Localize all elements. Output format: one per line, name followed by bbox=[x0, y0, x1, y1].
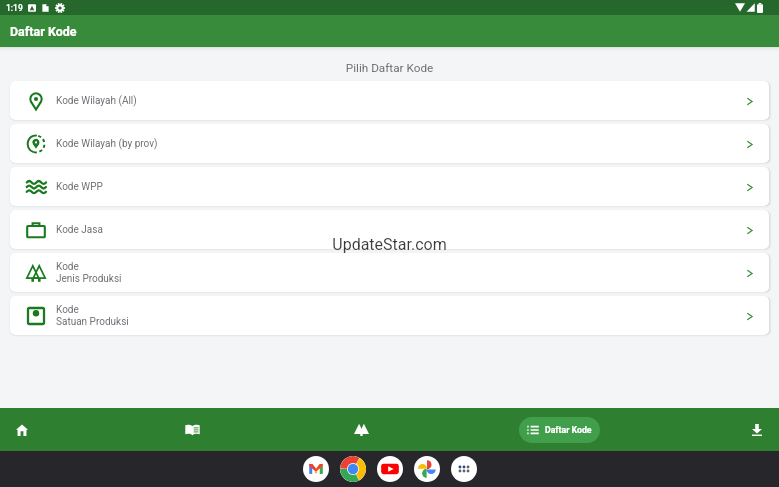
button[interactable]: Hutan bbox=[349, 408, 373, 451]
staticText: Kode Jasa bbox=[56, 224, 103, 236]
staticText: Kode Wilayah (by prov) bbox=[56, 138, 158, 150]
staticText: Jenis Produksi bbox=[56, 273, 122, 285]
staticText: Daftar Kode bbox=[545, 425, 592, 435]
staticText: Pilih Daftar Kode bbox=[0, 61, 779, 75]
staticText: Satuan Produksi bbox=[56, 316, 129, 328]
button[interactable]: Kode Wilayah (by prov) bbox=[10, 124, 769, 163]
button[interactable]: Unduh bbox=[745, 408, 769, 451]
button[interactable]: Kode bbox=[10, 296, 769, 335]
staticText: Kode bbox=[56, 304, 79, 316]
button[interactable]: Daftar Kode bbox=[519, 417, 600, 443]
button[interactable]: Buku Panduan bbox=[180, 408, 204, 451]
button[interactable]: Home bbox=[10, 408, 34, 451]
button[interactable]: Kode WPP bbox=[10, 167, 769, 206]
button[interactable]: Gmail bbox=[303, 456, 329, 482]
button[interactable]: Chrome bbox=[340, 456, 366, 482]
staticText: Kode bbox=[56, 261, 79, 273]
staticText: Kode WPP bbox=[56, 181, 103, 193]
button[interactable]: Kode bbox=[10, 253, 769, 292]
button[interactable]: Kode Jasa bbox=[10, 210, 769, 249]
staticText: Kode Wilayah (All) bbox=[56, 95, 137, 107]
button[interactable]: Photos bbox=[414, 456, 440, 482]
staticText: UpdateStar.com bbox=[332, 235, 447, 254]
button[interactable]: YouTube bbox=[377, 456, 403, 482]
staticText: Daftar Kode bbox=[10, 24, 77, 39]
staticText: 1:19 bbox=[6, 3, 23, 13]
button[interactable]: Kode Wilayah (All) bbox=[10, 81, 769, 120]
button[interactable]: All apps bbox=[451, 456, 477, 482]
